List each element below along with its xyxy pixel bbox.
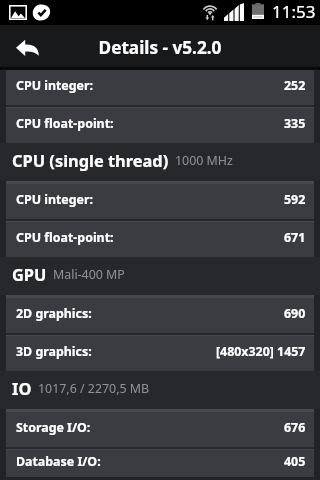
- staticText: Database I/O:: [16, 453, 101, 470]
- staticText: CPU float-point:: [16, 115, 114, 132]
- staticText: Storage I/O:: [16, 419, 91, 436]
- button[interactable]: Back: [0, 25, 52, 70]
- staticText: CPU integer:: [16, 77, 94, 94]
- button[interactable]: 2D graphics:: [6, 298, 314, 333]
- staticText: CPU (single thread): [12, 149, 169, 171]
- staticText: Details - v5.2.0: [0, 36, 320, 59]
- staticText: 592: [284, 191, 306, 208]
- staticText: Mali-400 MP: [53, 266, 125, 283]
- staticText: CPU float-point:: [16, 229, 114, 246]
- staticText: 1017,6 / 2270,5 MB: [38, 380, 150, 397]
- staticText: 1000 MHz: [175, 152, 233, 169]
- staticText: 252: [284, 77, 306, 94]
- staticText: CPU integer:: [16, 191, 94, 208]
- button[interactable]: CPU integer:: [6, 70, 314, 105]
- staticText: IO: [12, 377, 32, 399]
- staticText: 11:53: [272, 0, 316, 23]
- staticText: [480x320] 1457: [216, 343, 306, 360]
- button[interactable]: Database I/O:: [6, 450, 314, 477]
- staticText: 690: [284, 305, 306, 322]
- button[interactable]: Storage I/O:: [6, 412, 314, 447]
- staticText: 671: [284, 229, 306, 246]
- staticText: 3D graphics:: [16, 343, 92, 360]
- button[interactable]: CPU float-point:: [6, 108, 314, 143]
- staticText: 405: [284, 453, 306, 470]
- button[interactable]: 3D graphics:: [6, 336, 314, 371]
- button[interactable]: CPU float-point:: [6, 222, 314, 257]
- staticText: GPU: [12, 263, 47, 285]
- staticText: 2D graphics:: [16, 305, 92, 322]
- staticText: 676: [284, 419, 306, 436]
- staticText: 335: [284, 115, 306, 132]
- button[interactable]: CPU integer:: [6, 184, 314, 219]
